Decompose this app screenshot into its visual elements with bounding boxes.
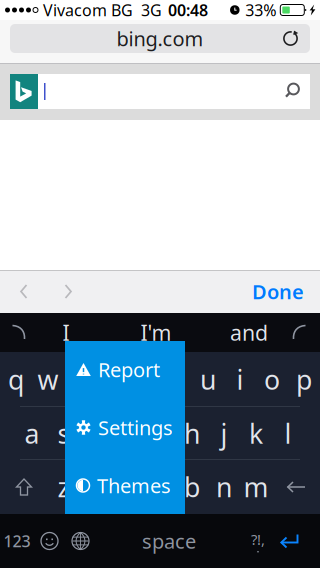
staticText: and — [230, 318, 268, 347]
button[interactable]: I'm — [96, 313, 216, 352]
button[interactable]: e — [64, 352, 96, 407]
button[interactable]: b — [176, 460, 208, 514]
button[interactable]: Emoji — [34, 514, 65, 568]
button[interactable]: l — [272, 407, 304, 460]
staticText: I'm — [140, 318, 171, 347]
staticText: e — [72, 362, 87, 397]
button[interactable]: k — [240, 407, 272, 460]
button[interactable]: q — [0, 352, 32, 407]
button[interactable]: Next keyboard — [65, 514, 96, 568]
staticText: ?!, — [251, 529, 265, 549]
button[interactable]: x — [80, 460, 112, 514]
staticText: k — [249, 416, 263, 451]
button[interactable]: r — [96, 352, 128, 407]
staticText: s — [57, 416, 70, 451]
staticText: n — [216, 469, 232, 505]
staticText: j — [220, 416, 227, 451]
button[interactable]: space — [96, 514, 242, 568]
button[interactable]: Done — [238, 270, 318, 313]
button[interactable]: y — [160, 352, 192, 407]
staticText: 123 — [3, 530, 30, 552]
button[interactable]: g — [144, 407, 176, 460]
button[interactable]: w — [32, 352, 64, 407]
staticText: h — [184, 416, 200, 451]
button[interactable]: Shift — [0, 460, 48, 514]
button[interactable]: bing.com — [10, 24, 310, 53]
staticText: c — [121, 469, 134, 505]
button[interactable]: and — [216, 313, 282, 352]
staticText: a — [24, 416, 39, 451]
staticText: x — [89, 469, 103, 505]
staticText: Settings — [98, 414, 173, 441]
staticText: g — [152, 416, 168, 451]
button[interactable]: a — [16, 407, 48, 460]
staticText: f — [123, 416, 132, 451]
staticText: u — [200, 362, 216, 397]
button[interactable]: h — [176, 407, 208, 460]
staticText: bing.com — [116, 25, 203, 52]
button[interactable]: Return — [274, 514, 306, 568]
staticText: 33% — [245, 0, 276, 21]
button[interactable]: z — [48, 460, 80, 514]
staticText: Done — [252, 278, 304, 305]
staticText: t — [139, 362, 149, 397]
staticText: d — [88, 416, 104, 451]
button[interactable]: Previous field — [2, 270, 46, 313]
button[interactable]: Settings — [65, 398, 185, 456]
button[interactable]: t — [128, 352, 160, 407]
staticText: l — [284, 416, 291, 451]
staticText: I — [62, 318, 69, 347]
button[interactable]: Delete — [272, 460, 320, 514]
button[interactable]: i — [224, 352, 256, 407]
button[interactable]: I — [36, 313, 96, 352]
button[interactable]: Undo — [2, 313, 36, 352]
button[interactable]: Redo — [282, 313, 316, 352]
staticText: Report — [98, 356, 160, 383]
button[interactable]: Themes — [65, 456, 185, 514]
button[interactable]: v — [144, 460, 176, 514]
button[interactable]: o — [256, 352, 288, 407]
staticText: Themes — [97, 472, 171, 499]
staticText: space — [142, 528, 196, 554]
button[interactable]: c — [112, 460, 144, 514]
button[interactable]: f — [112, 407, 144, 460]
button[interactable]: d — [80, 407, 112, 460]
button[interactable]: n — [208, 460, 240, 514]
button[interactable]: p — [288, 352, 320, 407]
button[interactable]: u — [192, 352, 224, 407]
staticText: 3G — [141, 0, 162, 21]
staticText: i — [236, 362, 243, 397]
staticText: p — [296, 362, 312, 397]
button[interactable]: Next field — [46, 270, 90, 313]
staticText: r — [106, 362, 117, 397]
button[interactable]: j — [208, 407, 240, 460]
button[interactable]: m — [240, 460, 272, 514]
staticText: m — [243, 469, 268, 505]
staticText: Vivacom BG — [43, 0, 133, 21]
staticText: w — [37, 362, 58, 397]
staticText: z — [57, 469, 70, 505]
button[interactable]: ?!, — [242, 514, 274, 568]
button[interactable]: s — [48, 407, 80, 460]
button[interactable]: 123 — [0, 514, 34, 568]
staticText: v — [153, 469, 167, 505]
staticText: q — [8, 362, 24, 397]
staticText: b — [184, 469, 200, 505]
button[interactable]: Report — [65, 340, 185, 398]
staticText: 00:48 — [168, 0, 208, 21]
staticText: o — [264, 362, 280, 397]
